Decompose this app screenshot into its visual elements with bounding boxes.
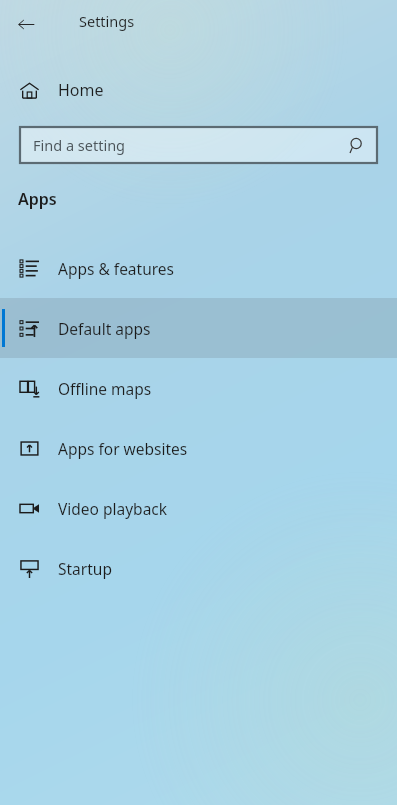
- button[interactable]: Default apps: [0, 298, 397, 358]
- staticText: Apps & features: [58, 258, 175, 279]
- button[interactable]: Startup: [0, 538, 397, 598]
- staticText: Default apps: [58, 318, 151, 339]
- staticText: Apps: [18, 188, 57, 210]
- button[interactable]: Apps & features: [0, 238, 397, 298]
- staticText: Offline maps: [58, 378, 152, 399]
- button[interactable]: Video playback: [0, 478, 397, 538]
- button[interactable]: Apps for websites: [0, 418, 397, 478]
- staticText: Video playback: [58, 498, 168, 519]
- staticText: Settings: [79, 11, 135, 31]
- button[interactable]: Offline maps: [0, 358, 397, 418]
- staticText: Apps for websites: [58, 438, 188, 459]
- staticText: Startup: [58, 558, 112, 579]
- staticText: Find a setting: [33, 135, 126, 155]
- button[interactable]: Home: [0, 70, 397, 110]
- button[interactable]: Back: [8, 6, 44, 42]
- staticText: Home: [58, 79, 104, 101]
- button[interactable]: Find a setting: [20, 127, 377, 163]
